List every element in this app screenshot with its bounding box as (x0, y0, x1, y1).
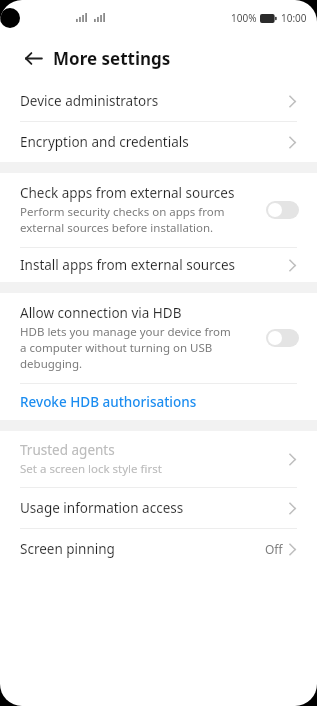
button[interactable]: Check apps from external sources (0, 173, 317, 247)
staticText: Usage information access (20, 499, 288, 517)
staticText: Screen pinning (20, 540, 265, 558)
staticText: Trusted agents (20, 441, 115, 459)
button[interactable]: Back (14, 39, 52, 77)
button[interactable]: Install apps from external sources (0, 248, 317, 282)
button[interactable]: Toggle (266, 329, 299, 347)
staticText: Allow connection via HDB (20, 304, 182, 322)
button[interactable]: Allow connection via HDB (0, 293, 317, 383)
button[interactable]: Revoke HDB authorisations (0, 384, 317, 420)
staticText: Revoke HDB authorisations (20, 393, 197, 411)
staticText: Encryption and credentials (20, 133, 288, 151)
staticText: Set a screen lock style first (20, 461, 162, 477)
button[interactable]: Usage information access (0, 488, 317, 528)
button[interactable]: Device administrators (0, 81, 317, 121)
staticText: Device administrators (20, 92, 288, 110)
button[interactable]: Toggle (266, 201, 299, 219)
staticText: Install apps from external sources (20, 256, 288, 274)
staticText: Check apps from external sources (20, 184, 235, 202)
staticText: 100% (231, 11, 257, 25)
staticText: 10:00 (281, 11, 307, 25)
button[interactable]: Trusted agents (0, 431, 317, 487)
staticText: HDB lets you manage your device from a c… (20, 324, 231, 372)
button[interactable]: Screen pinning (0, 529, 317, 569)
staticText: Perform security checks on apps from ext… (20, 204, 225, 236)
button[interactable]: Encryption and credentials (0, 122, 317, 162)
staticText: Off (265, 541, 283, 557)
staticText: More settings (53, 47, 171, 70)
